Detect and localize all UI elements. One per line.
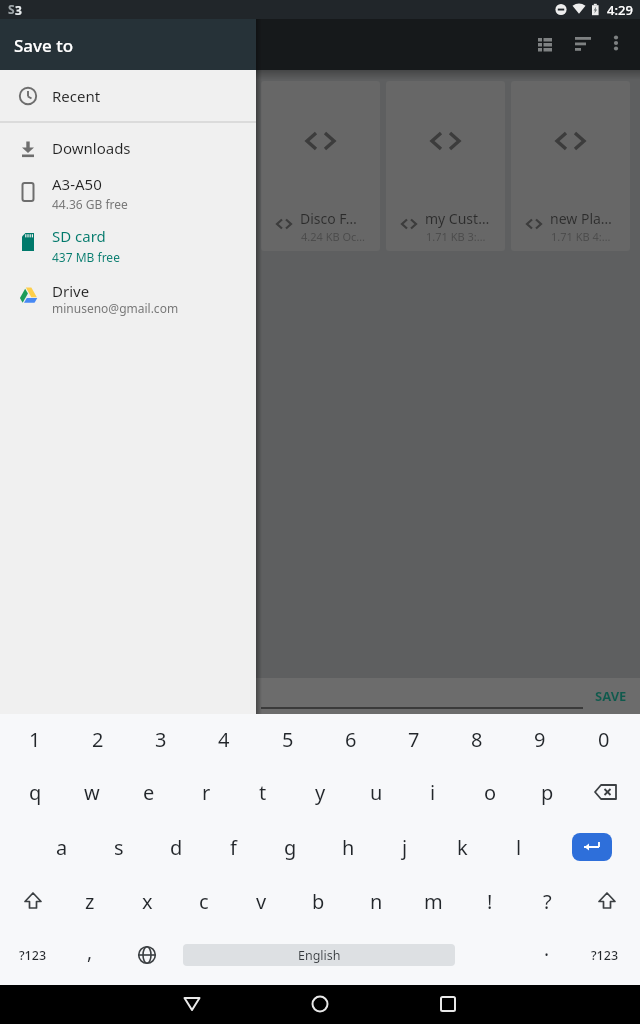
staticText: c (199, 888, 209, 915)
staticText: i (430, 779, 436, 806)
button[interactable]: q (15, 776, 55, 808)
button[interactable] (308, 992, 332, 1016)
button[interactable] (0, 272, 256, 322)
button[interactable] (436, 992, 460, 1016)
staticText: my Cust… (425, 209, 490, 228)
button[interactable]: ? (527, 885, 567, 917)
staticText: d (170, 834, 183, 861)
staticText: t (259, 779, 267, 806)
button[interactable]: u (356, 776, 396, 808)
button[interactable]: , (75, 936, 105, 968)
button[interactable]: English (183, 944, 455, 966)
staticText: 1.71 KB 3:… (426, 229, 486, 244)
staticText: q (29, 779, 42, 806)
button[interactable]: t (243, 776, 283, 808)
button[interactable] (592, 780, 622, 804)
staticText: 4 (218, 726, 230, 753)
button[interactable]: 8 (457, 723, 497, 755)
button[interactable] (0, 124, 256, 172)
button[interactable]: 2 (78, 723, 118, 755)
staticText: x (142, 888, 153, 915)
button[interactable]: n (356, 885, 396, 917)
button[interactable]: ! (470, 885, 510, 917)
button[interactable]: ?123 (8, 939, 58, 971)
button[interactable]: s (99, 831, 139, 863)
button[interactable]: m (413, 885, 453, 917)
staticText: , (87, 939, 93, 965)
staticText: 1 (29, 726, 41, 753)
button[interactable] (572, 833, 612, 861)
button[interactable]: · (532, 939, 562, 971)
button[interactable] (0, 172, 256, 222)
button[interactable]: b (298, 885, 338, 917)
button[interactable]: ?123 (580, 939, 630, 971)
staticText: 3 (15, 2, 22, 18)
button[interactable]: 9 (520, 723, 560, 755)
staticText: 9 (534, 726, 546, 753)
staticText: y (315, 779, 326, 806)
button[interactable]: 6 (331, 723, 371, 755)
button[interactable]: 7 (394, 723, 434, 755)
button[interactable] (530, 32, 630, 56)
staticText: ? (543, 888, 552, 915)
staticText: h (342, 834, 355, 861)
staticText: 3 (155, 726, 167, 753)
button[interactable]: f (213, 831, 253, 863)
staticText: w (84, 779, 100, 806)
staticText: 8 (471, 726, 483, 753)
button[interactable] (21, 889, 45, 913)
button[interactable]: x (127, 885, 167, 917)
staticText: v (256, 888, 267, 915)
staticText: SAVE (595, 687, 627, 705)
staticText: r (202, 779, 211, 806)
staticText: e (143, 779, 155, 806)
staticText: ! (487, 888, 493, 915)
button[interactable]: w (72, 776, 112, 808)
button[interactable] (0, 222, 256, 272)
staticText: l (516, 834, 522, 861)
button[interactable] (261, 81, 380, 251)
button[interactable]: d (156, 831, 196, 863)
staticText: f (230, 834, 237, 861)
staticText: b (312, 888, 325, 915)
staticText: p (541, 779, 554, 806)
button[interactable]: o (470, 776, 510, 808)
button[interactable]: 5 (268, 723, 308, 755)
button[interactable] (595, 889, 619, 913)
button[interactable]: 1 (15, 723, 55, 755)
button[interactable]: l (499, 831, 539, 863)
button[interactable]: a (42, 831, 82, 863)
button[interactable] (386, 81, 505, 251)
staticText: Save to (14, 34, 74, 57)
button[interactable] (135, 943, 159, 967)
staticText: · (544, 942, 550, 968)
button[interactable]: 3 (141, 723, 181, 755)
button[interactable] (511, 81, 630, 251)
staticText: new Pla… (550, 209, 612, 228)
button[interactable]: g (270, 831, 310, 863)
button[interactable]: z (70, 885, 110, 917)
button[interactable]: r (186, 776, 226, 808)
button[interactable]: 4 (204, 723, 244, 755)
button[interactable]: h (328, 831, 368, 863)
staticText: n (370, 888, 383, 915)
staticText: m (424, 888, 443, 915)
button[interactable]: j (385, 831, 425, 863)
button[interactable]: c (184, 885, 224, 917)
button[interactable]: p (527, 776, 567, 808)
button[interactable]: 0 (584, 723, 624, 755)
staticText: g (284, 834, 297, 861)
button[interactable]: y (300, 776, 340, 808)
button[interactable]: v (241, 885, 281, 917)
staticText: S (8, 1, 15, 17)
button[interactable]: SAVE (581, 680, 640, 712)
staticText: 4.24 KB Oc… (301, 229, 366, 244)
button[interactable] (180, 992, 204, 1016)
staticText: 7 (408, 726, 420, 753)
button[interactable] (0, 72, 256, 120)
staticText: Disco F… (300, 209, 357, 228)
button[interactable]: i (413, 776, 453, 808)
button[interactable]: k (442, 831, 482, 863)
button[interactable]: e (129, 776, 169, 808)
staticText: minuseno@gmail.com (52, 300, 179, 316)
